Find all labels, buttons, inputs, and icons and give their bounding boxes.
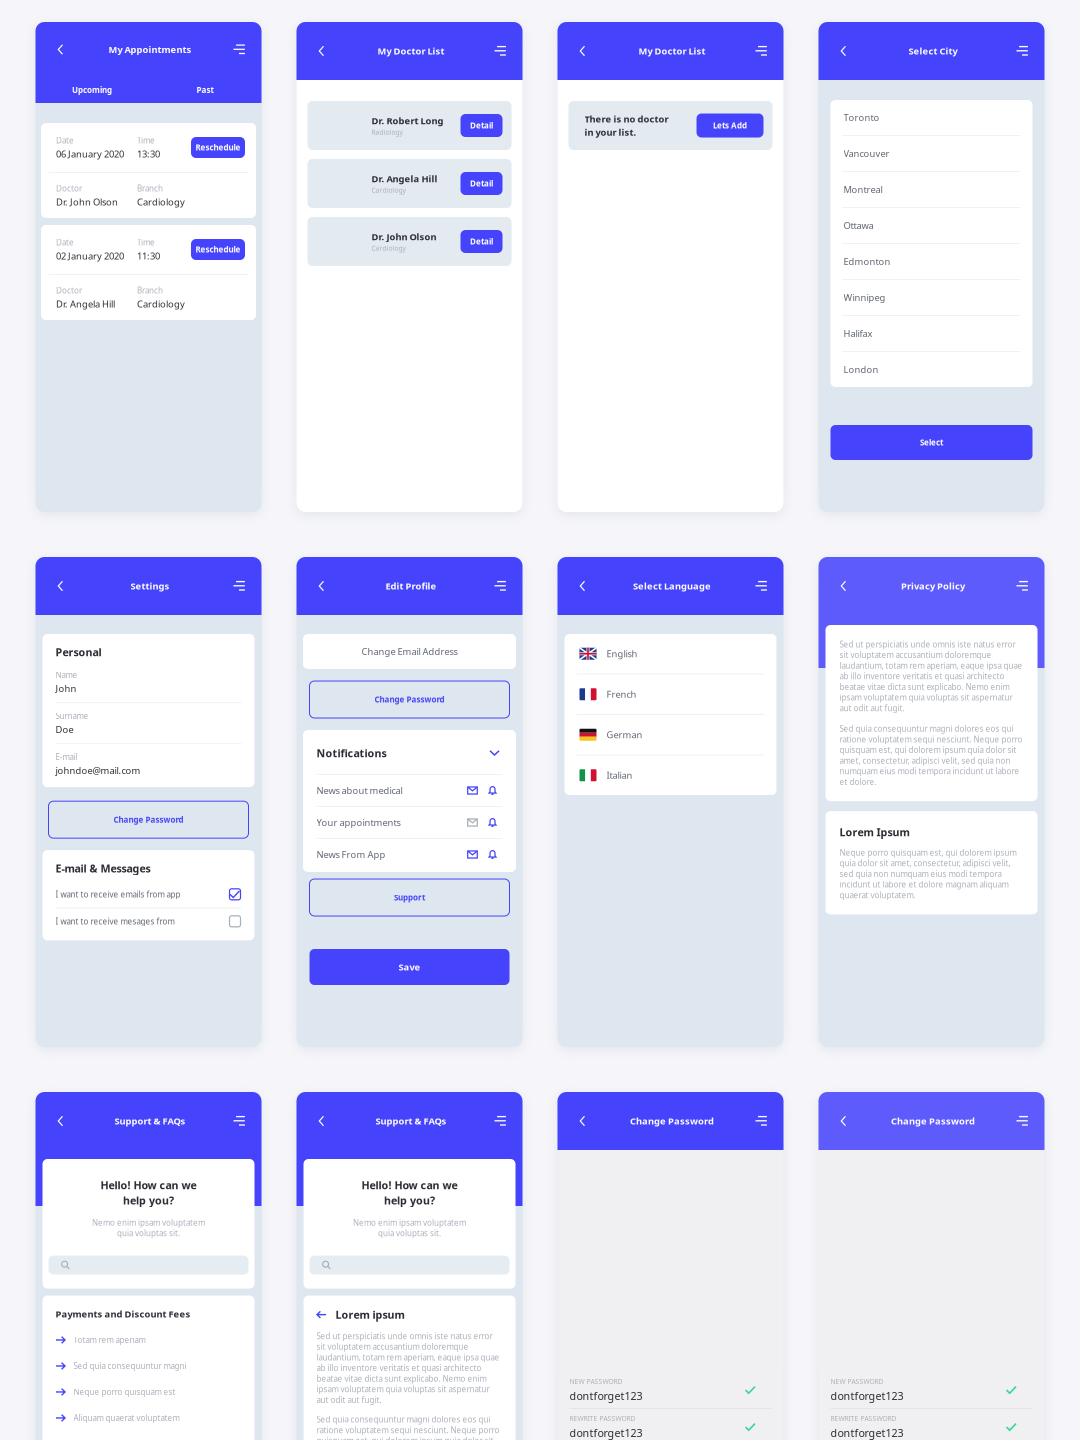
staticText: Montreal <box>843 183 882 196</box>
button[interactable]: Change Email Address <box>303 634 516 669</box>
button[interactable]: Neque porro quisquam est <box>55 1379 241 1405</box>
button[interactable]: Back <box>832 1110 854 1132</box>
staticText: Upcoming <box>72 85 112 95</box>
staticText: Date <box>56 237 74 248</box>
button[interactable]: Menu <box>228 575 250 597</box>
button[interactable]: Edmonton <box>830 244 1032 279</box>
button[interactable]: E-mail notification <box>462 847 482 861</box>
button[interactable]: Push notification <box>482 783 502 797</box>
staticText: Personal <box>55 645 101 659</box>
button[interactable]: Push notification <box>482 815 502 829</box>
button[interactable]: Back <box>571 575 593 597</box>
button[interactable]: Italian <box>564 755 776 795</box>
button[interactable]: Aliquam quaerat voluptatem <box>55 1405 241 1431</box>
staticText: I want to receive mesages from <box>55 916 174 927</box>
staticText: Settings <box>130 580 169 592</box>
button[interactable]: Back <box>49 1110 71 1132</box>
staticText: dontforget123 <box>830 1389 903 1403</box>
staticText: Dr. John Olson <box>56 196 118 208</box>
button[interactable]: Select <box>830 425 1032 460</box>
staticText: English <box>606 648 637 660</box>
staticText: dontforget123 <box>569 1389 642 1403</box>
staticText: Cardiology <box>371 244 405 253</box>
button[interactable]: Back <box>310 40 332 62</box>
button[interactable]: Vancouver <box>830 136 1032 171</box>
staticText: Select Language <box>633 580 711 592</box>
staticText: Totam rem aperiam <box>73 1335 145 1345</box>
button[interactable]: Support <box>309 879 509 916</box>
button[interactable]: Menu <box>489 575 511 597</box>
staticText: Toronto <box>843 111 879 124</box>
staticText: Payments and Discount Fees <box>55 1308 190 1320</box>
staticText: Ottawa <box>843 219 873 232</box>
button[interactable]: German <box>564 715 776 754</box>
button[interactable]: Menu <box>489 1110 511 1132</box>
button[interactable]: Sed quia consequuntur magni <box>55 1353 241 1379</box>
staticText: Sed quia consequuntur magni <box>73 1361 186 1371</box>
button[interactable]: Detail <box>460 230 502 253</box>
button[interactable]: Menu <box>228 38 250 60</box>
button[interactable]: Totam rem aperiam <box>55 1327 241 1353</box>
button[interactable]: Halifax <box>830 316 1032 351</box>
button[interactable]: London <box>830 352 1032 387</box>
button[interactable]: Change Password <box>309 681 509 718</box>
button[interactable]: E-mail notification <box>462 783 482 797</box>
staticText: Halifax <box>843 327 872 340</box>
staticText: Dr. Angela Hill <box>371 172 437 185</box>
button[interactable]: Back <box>571 1110 593 1132</box>
staticText: 11:30 <box>137 250 160 262</box>
button[interactable]: Menu <box>1011 1110 1033 1132</box>
button[interactable]: Back <box>49 38 71 60</box>
staticText: Notifications <box>316 746 386 760</box>
button[interactable]: Menu <box>228 1110 250 1132</box>
button[interactable]: Menu <box>750 40 772 62</box>
button[interactable]: Collapse notifications <box>486 747 502 759</box>
staticText: John <box>55 682 76 695</box>
staticText: German <box>606 729 642 741</box>
staticText: Dr. John Olson <box>371 230 436 243</box>
staticText: 06 January 2020 <box>56 148 124 160</box>
button[interactable]: Detail <box>460 114 502 137</box>
button[interactable]: Back <box>310 575 332 597</box>
button[interactable]: Back <box>316 1310 326 1320</box>
staticText: Dr. Angela Hill <box>56 298 115 310</box>
staticText: Change Email Address <box>361 645 457 658</box>
staticText: Detail <box>470 236 493 247</box>
button[interactable]: Lets Add <box>696 113 763 137</box>
button[interactable]: Past <box>148 77 261 103</box>
staticText: Neque porro quisquam est <box>73 1387 175 1397</box>
button[interactable]: Push notification <box>482 847 502 861</box>
button[interactable]: Change Password <box>48 801 248 838</box>
staticText: help you? <box>384 1193 435 1207</box>
button[interactable]: Ottawa <box>830 208 1032 243</box>
staticText: Save <box>398 961 420 973</box>
button[interactable]: Back <box>571 40 593 62</box>
button[interactable]: Reschedule <box>191 137 245 158</box>
button[interactable]: Back <box>310 1110 332 1132</box>
button[interactable]: E-mail notification <box>462 815 482 829</box>
button[interactable]: English <box>564 634 776 673</box>
staticText: Doctor <box>56 285 82 296</box>
button[interactable]: Detail <box>460 172 502 195</box>
staticText: Support & FAQs <box>114 1115 185 1127</box>
button[interactable]: Winnipeg <box>830 280 1032 315</box>
staticText: Cardiology <box>137 298 185 310</box>
button[interactable]: French <box>564 674 776 714</box>
button[interactable]: Reschedule <box>191 239 245 260</box>
button[interactable]: Upcoming <box>35 77 148 103</box>
staticText: REWRITE PASSWORD <box>830 1414 896 1423</box>
staticText: Neque porro quisquam est, qui dolorem ip… <box>839 847 1016 900</box>
button[interactable]: Menu <box>750 575 772 597</box>
button[interactable]: Menu <box>750 1110 772 1132</box>
button[interactable]: Back <box>832 575 854 597</box>
button[interactable]: Back <box>832 40 854 62</box>
button[interactable]: Toronto <box>830 100 1032 135</box>
button[interactable]: Save <box>309 949 509 985</box>
staticText: quia voluptas sit. <box>117 1228 180 1239</box>
staticText: Surname <box>55 711 88 721</box>
button[interactable]: Montreal <box>830 172 1032 207</box>
button[interactable]: Menu <box>489 40 511 62</box>
button[interactable]: Menu <box>1011 40 1033 62</box>
button[interactable]: Back <box>49 575 71 597</box>
button[interactable]: Menu <box>1011 575 1033 597</box>
